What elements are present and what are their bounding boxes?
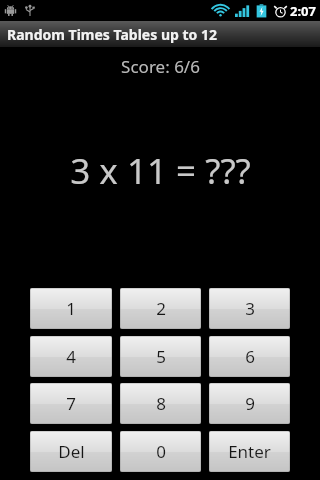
staticText: 2:07 [290, 2, 316, 20]
button[interactable]: 1 [30, 288, 112, 329]
staticText: 4 [66, 345, 76, 368]
button[interactable]: 5 [120, 336, 201, 377]
button[interactable]: Del [30, 431, 112, 472]
button[interactable]: 6 [209, 336, 290, 377]
staticText: 2 [156, 297, 166, 320]
button[interactable]: Enter [209, 431, 290, 472]
staticText: 6 [245, 345, 255, 368]
staticText: 7 [66, 392, 76, 415]
button[interactable]: 7 [30, 383, 112, 424]
staticText: Score: 6/6 [121, 55, 200, 78]
staticText: 9 [245, 392, 255, 415]
staticText: Random Times Tables up to 12 [7, 25, 217, 44]
staticText: 0 [156, 440, 166, 463]
staticText: 8 [156, 392, 166, 415]
button[interactable]: 4 [30, 336, 112, 377]
staticText: 5 [156, 345, 166, 368]
staticText: Enter [228, 440, 271, 463]
button[interactable]: 0 [120, 431, 201, 472]
button[interactable]: 3 [209, 288, 290, 329]
button[interactable]: 9 [209, 383, 290, 424]
staticText: 3 x 11 = ??? [70, 147, 251, 195]
staticText: 3 [245, 297, 255, 320]
staticText: 1 [66, 297, 76, 320]
button[interactable]: 2 [120, 288, 201, 329]
staticText: Del [58, 440, 85, 463]
button[interactable]: 8 [120, 383, 201, 424]
